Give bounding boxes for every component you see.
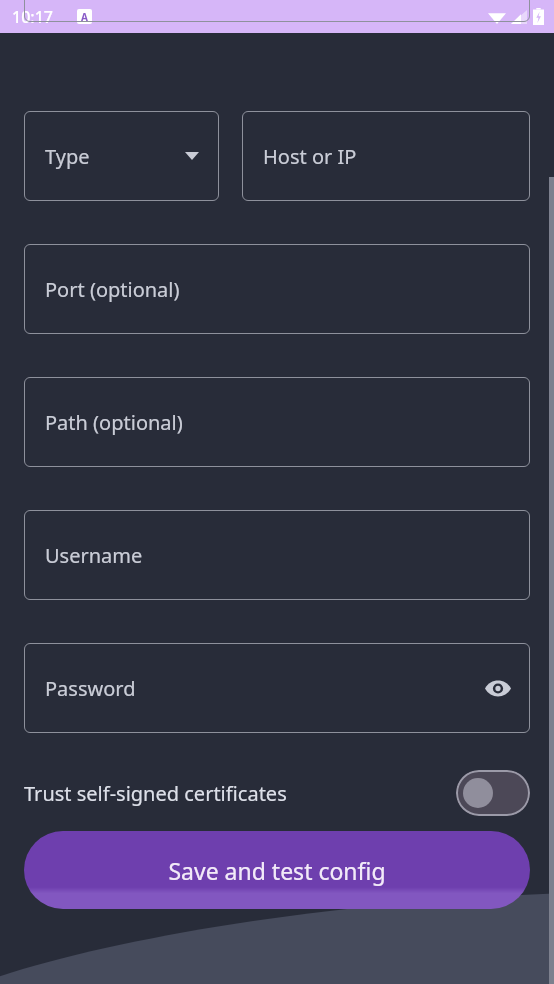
button[interactable]: [24, 0, 530, 22]
button[interactable]: Username: [24, 510, 530, 600]
staticText: Path (optional): [45, 409, 183, 436]
button[interactable]: Type: [24, 111, 219, 201]
button[interactable]: Show password: [478, 668, 518, 708]
button[interactable]: Trust self-signed certificates: [0, 761, 554, 825]
staticText: Password: [45, 675, 136, 702]
staticText: Type: [45, 143, 90, 170]
staticText: A: [81, 10, 88, 24]
button[interactable]: Trust self-signed certificates toggle: [456, 770, 530, 816]
staticText: Host or IP: [263, 143, 357, 170]
staticText: Save and test config: [168, 855, 386, 886]
button[interactable]: Path (optional): [24, 377, 530, 467]
button[interactable]: Save and test config: [24, 831, 530, 909]
staticText: Username: [45, 542, 143, 569]
button[interactable]: Port (optional): [24, 244, 530, 334]
button[interactable]: Password: [24, 643, 530, 733]
staticText: Port (optional): [45, 276, 180, 303]
staticText: Trust self-signed certificates: [24, 780, 287, 807]
staticText: 10:17: [12, 6, 53, 28]
button[interactable]: Host or IP: [242, 111, 530, 201]
